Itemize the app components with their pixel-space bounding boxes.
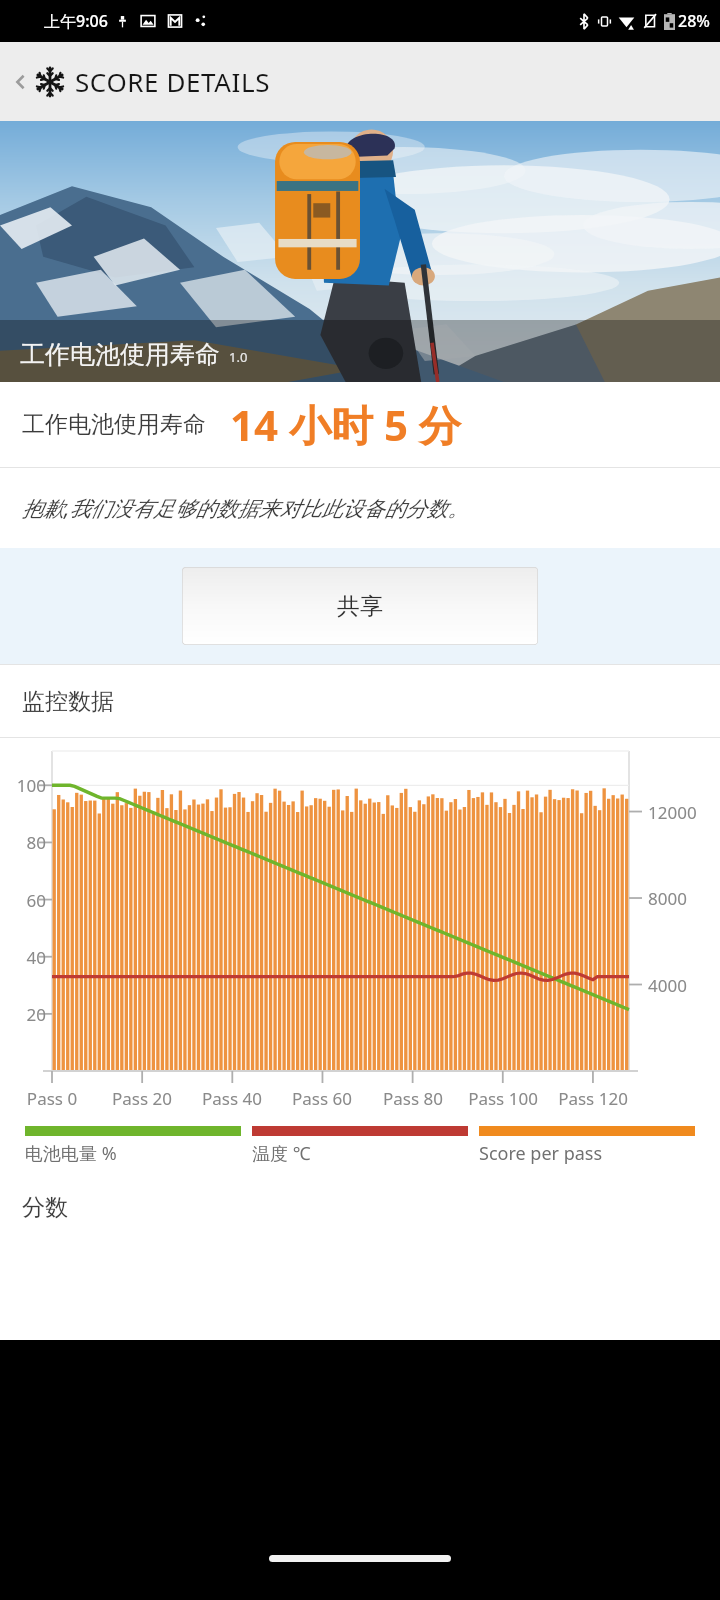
staticText: 分数: [22, 1193, 68, 1222]
staticText: 12000: [648, 801, 697, 824]
staticText: Pass 20: [100, 1087, 184, 1110]
staticText: Pass 100: [461, 1087, 545, 1110]
button[interactable]: Home: [269, 1555, 451, 1562]
staticText: 工作电池使用寿命: [22, 410, 206, 439]
staticText: 温度 ℃: [252, 1141, 311, 1166]
staticText: 工作电池使用寿命: [20, 339, 220, 370]
staticText: Pass 120: [551, 1087, 635, 1110]
staticText: 60: [12, 889, 46, 912]
staticText: 100: [12, 774, 46, 797]
staticText: SCORE DETAILS: [75, 64, 271, 99]
button[interactable]: Back: [0, 42, 720, 121]
staticText: Pass 40: [190, 1087, 274, 1110]
staticText: 抱歉,我们没有足够的数据来对比此设备的分数。: [22, 494, 469, 523]
button[interactable]: 共享: [182, 567, 538, 645]
staticText: 电池电量 %: [25, 1141, 117, 1166]
staticText: 40: [12, 946, 46, 969]
staticText: 14 小时 5 分: [230, 396, 461, 453]
staticText: 80: [12, 831, 46, 854]
staticText: 共享: [337, 592, 383, 621]
other: Back: [8, 69, 34, 95]
staticText: 8000: [648, 887, 687, 910]
staticText: 上午9:06: [44, 10, 108, 32]
staticText: Pass 60: [280, 1087, 364, 1110]
staticText: Score per pass: [479, 1141, 603, 1166]
staticText: 20: [12, 1003, 46, 1026]
staticText: 监控数据: [22, 687, 114, 716]
staticText: 1.0: [229, 348, 248, 366]
staticText: Pass 0: [10, 1087, 94, 1110]
staticText: 28%: [678, 10, 710, 32]
staticText: 4000: [648, 974, 687, 997]
staticText: Pass 80: [371, 1087, 455, 1110]
